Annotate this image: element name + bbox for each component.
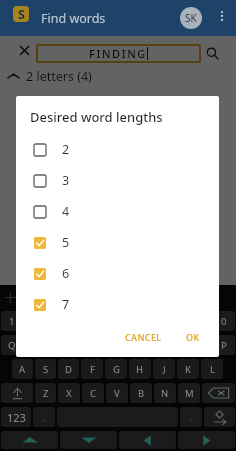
staticText: F bbox=[90, 363, 95, 376]
staticText: , bbox=[43, 412, 46, 423]
button[interactable]: 6 bbox=[16, 258, 219, 289]
button[interactable]: Account bbox=[180, 7, 202, 29]
button[interactable]: O bbox=[189, 335, 211, 355]
staticText: 0 bbox=[221, 315, 227, 328]
button[interactable]: Enter bbox=[204, 407, 235, 427]
staticText: N bbox=[161, 387, 169, 400]
button[interactable]: FINDING bbox=[36, 44, 201, 63]
button[interactable]: H bbox=[129, 359, 151, 379]
button[interactable]: I bbox=[165, 335, 187, 355]
button[interactable]: Search bbox=[203, 44, 221, 62]
button[interactable]: CANCEL bbox=[119, 327, 168, 347]
button[interactable]: C bbox=[82, 383, 104, 403]
button[interactable]: Shift bbox=[1, 383, 33, 403]
button[interactable]: Z bbox=[35, 383, 56, 403]
button[interactable]: D bbox=[58, 359, 79, 379]
staticText: 1 bbox=[9, 315, 15, 328]
staticText: Y bbox=[125, 339, 131, 352]
button[interactable]: More options bbox=[212, 6, 232, 26]
staticText: 3 bbox=[62, 172, 70, 189]
staticText: C bbox=[90, 387, 97, 400]
staticText: U bbox=[149, 339, 156, 352]
staticText: OK bbox=[186, 331, 200, 343]
button[interactable]: S bbox=[35, 359, 56, 379]
button[interactable]: L bbox=[201, 359, 223, 379]
staticText: 5 bbox=[62, 234, 70, 251]
button[interactable]: OK bbox=[180, 327, 206, 347]
button[interactable]: U bbox=[141, 335, 163, 355]
button[interactable]: 2 letters (4) bbox=[0, 64, 236, 88]
staticText: A bbox=[19, 363, 26, 376]
staticText: Find words bbox=[41, 10, 106, 27]
staticText: L bbox=[210, 363, 215, 376]
button[interactable]: B bbox=[130, 383, 152, 403]
button[interactable]: Backspace bbox=[202, 383, 235, 403]
staticText: Q bbox=[8, 339, 16, 352]
staticText: 2 bbox=[62, 141, 70, 158]
button[interactable]: A bbox=[12, 359, 33, 379]
staticText: D bbox=[65, 363, 72, 376]
button[interactable]: 0 bbox=[213, 311, 235, 331]
button[interactable]: 3 bbox=[16, 165, 219, 196]
staticText: 2 letters (4) bbox=[26, 68, 92, 85]
button[interactable]: M bbox=[178, 383, 200, 403]
button[interactable]: J bbox=[153, 359, 175, 379]
button[interactable]: G bbox=[105, 359, 127, 379]
button[interactable]: K bbox=[177, 359, 199, 379]
button[interactable]: Move left bbox=[119, 431, 176, 449]
button[interactable]: 2 bbox=[16, 134, 219, 165]
button[interactable]: F bbox=[81, 359, 103, 379]
button[interactable]: P bbox=[213, 335, 235, 355]
staticText: X bbox=[66, 387, 72, 400]
button[interactable]: 123 bbox=[1, 407, 31, 427]
button[interactable]: Move up bbox=[1, 431, 58, 449]
button[interactable]: Y bbox=[117, 335, 139, 355]
button[interactable]: X bbox=[58, 383, 80, 403]
staticText: Z bbox=[43, 387, 49, 400]
staticText: G bbox=[113, 363, 120, 376]
staticText: V bbox=[114, 387, 120, 400]
button[interactable]: 5 bbox=[16, 227, 219, 258]
staticText: M bbox=[185, 387, 194, 400]
button[interactable]: Move right bbox=[178, 431, 235, 449]
button[interactable]: , bbox=[33, 407, 55, 427]
button[interactable]: 7 bbox=[16, 289, 219, 320]
staticText: FINDING bbox=[89, 46, 147, 61]
button[interactable]: 1 bbox=[1, 311, 22, 331]
staticText: P bbox=[221, 339, 227, 352]
button[interactable]: Clear bbox=[16, 42, 33, 59]
staticText: 123 bbox=[7, 410, 26, 425]
button[interactable]: 4 bbox=[16, 196, 219, 227]
staticText: 7 bbox=[62, 296, 70, 313]
button[interactable]: Move down bbox=[60, 431, 117, 449]
button[interactable]: V bbox=[106, 383, 128, 403]
staticText: CANCEL bbox=[125, 331, 162, 343]
button[interactable]: N bbox=[154, 383, 176, 403]
button[interactable]: Q bbox=[1, 335, 22, 355]
